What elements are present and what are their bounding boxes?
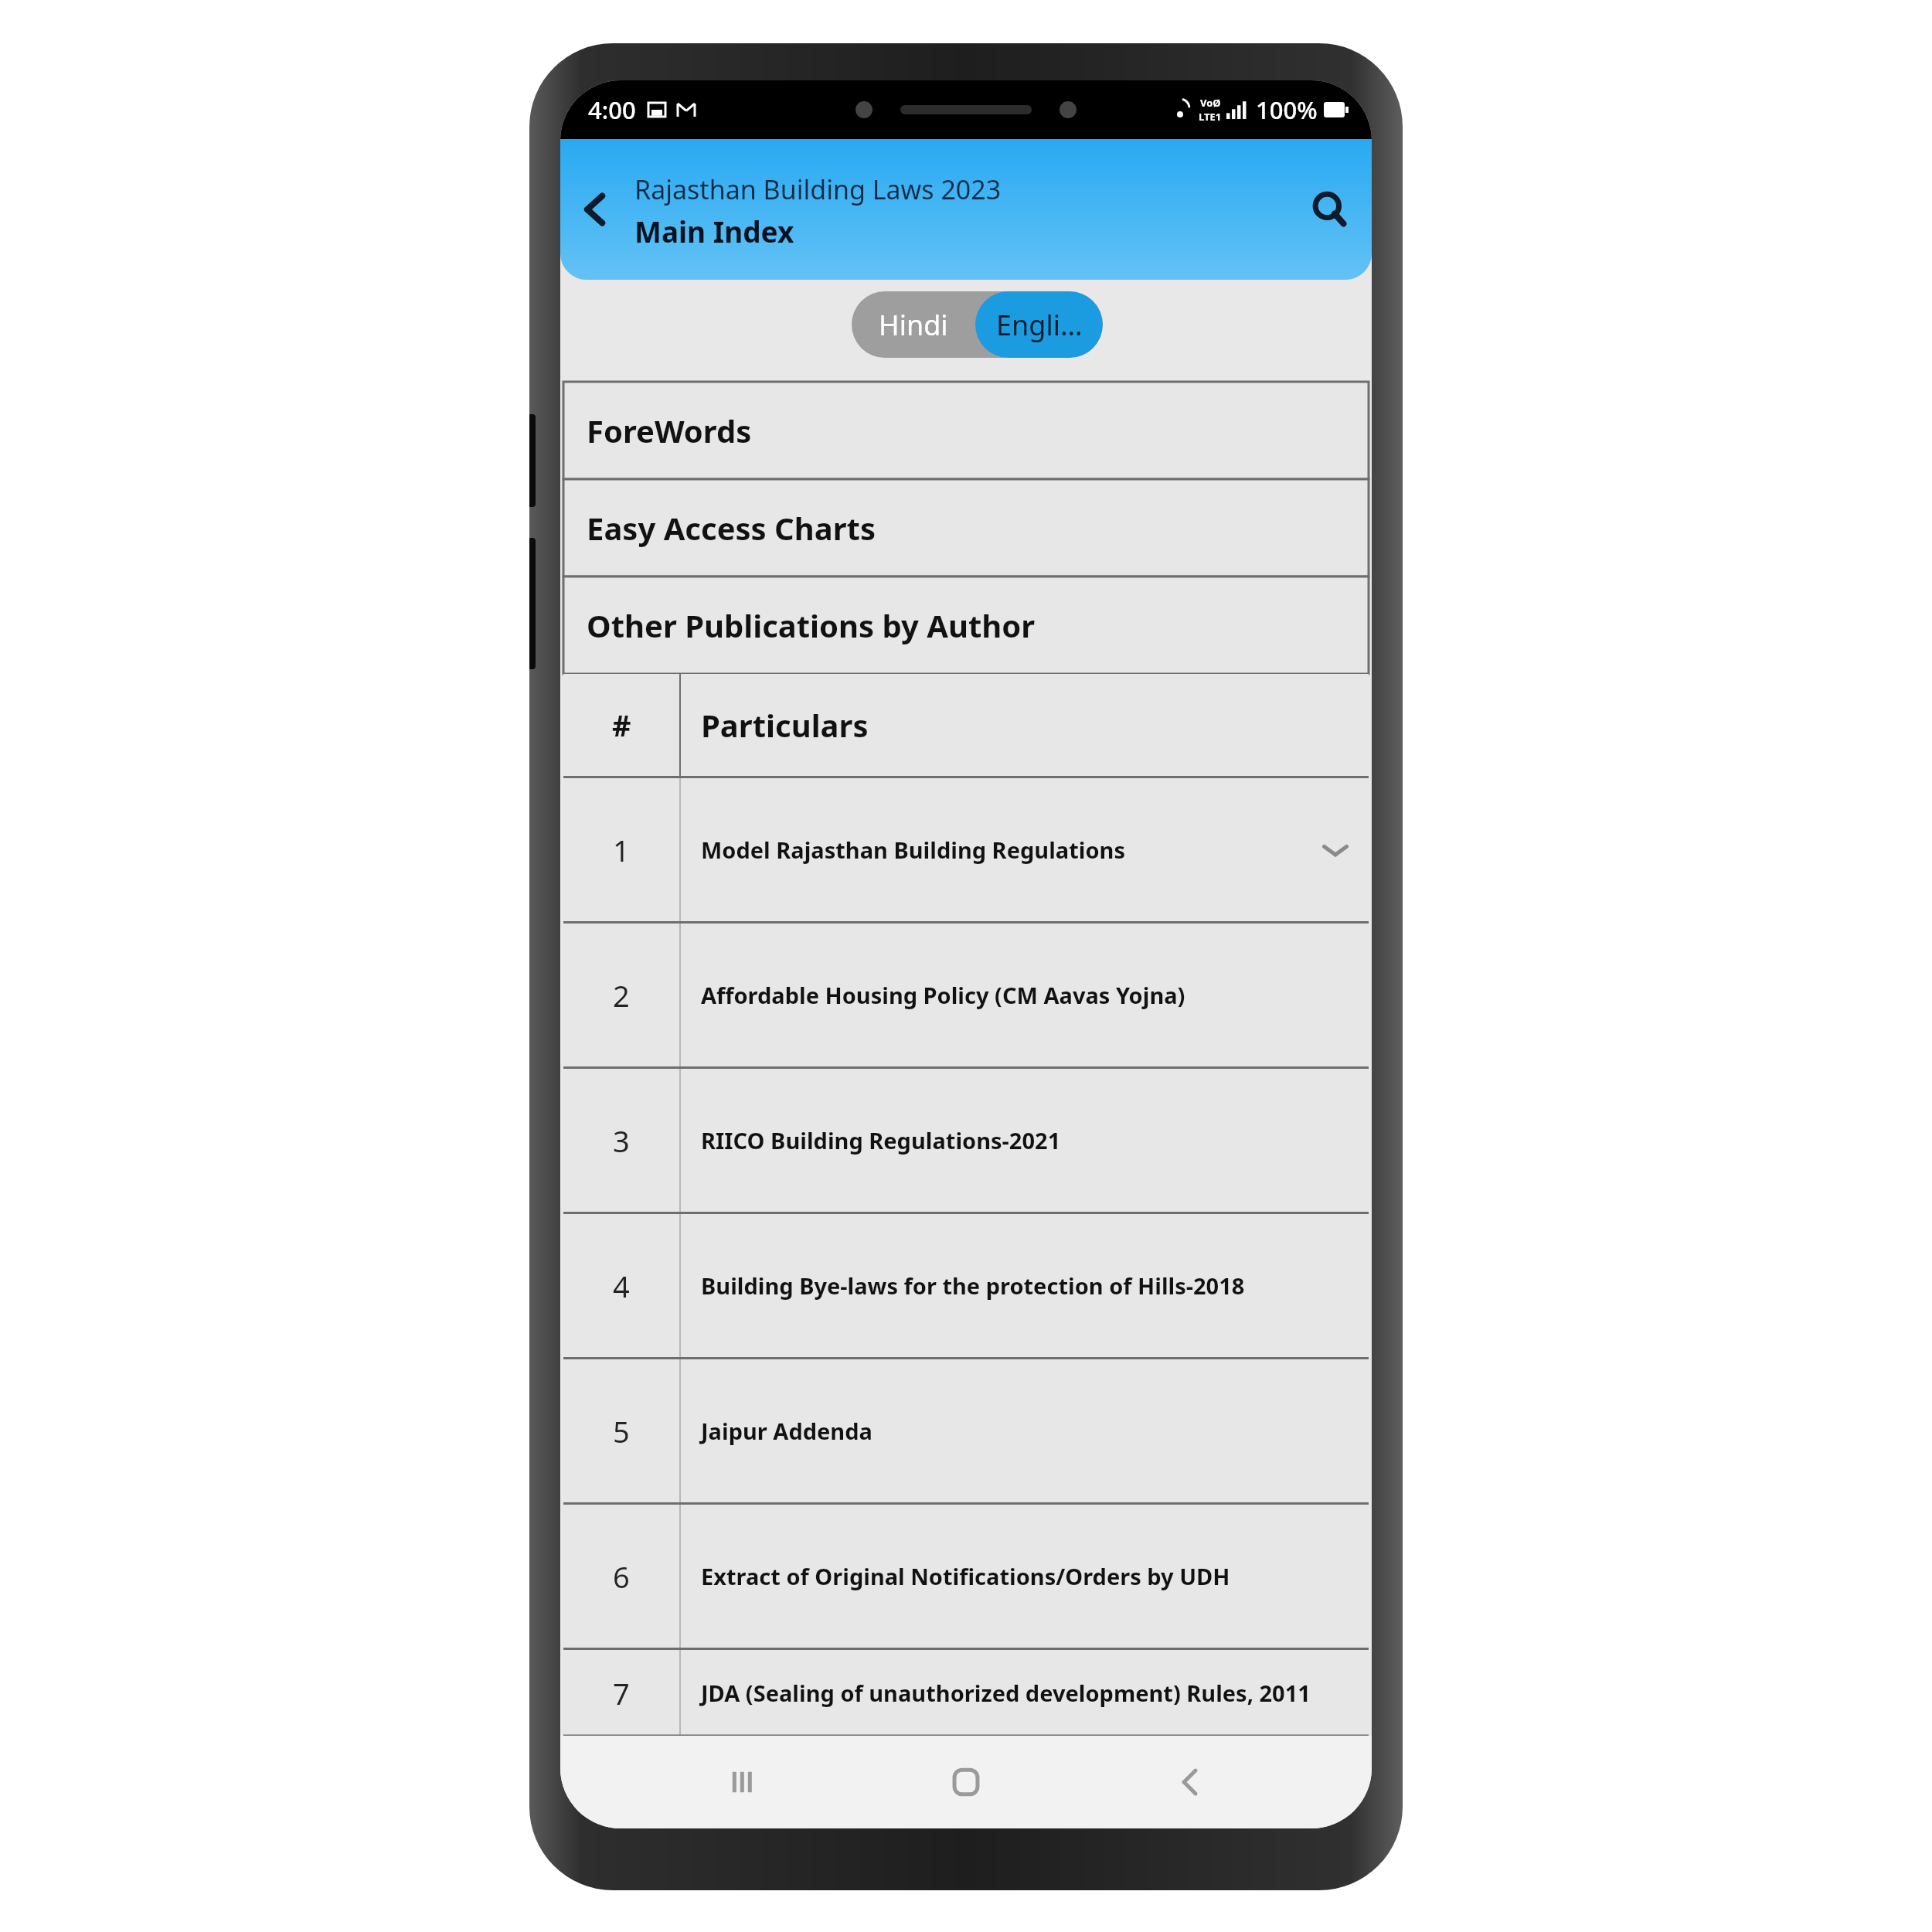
button[interactable]: 7: [563, 1650, 1369, 1736]
button[interactable]: 3: [563, 1069, 1369, 1212]
button[interactable]: Search: [1301, 180, 1359, 239]
staticText: Model Rajasthan Building Regulations: [701, 835, 1125, 865]
button[interactable]: ForeWords: [563, 382, 1369, 479]
button[interactable]: Other Publications by Author: [563, 577, 1369, 674]
button[interactable]: 1: [563, 778, 1369, 921]
staticText: 2: [613, 975, 630, 1015]
staticText: Hindi: [879, 306, 948, 344]
button[interactable]: 5: [563, 1359, 1369, 1502]
button[interactable]: 2: [563, 923, 1369, 1066]
button[interactable]: Hindi: [852, 291, 975, 358]
staticText: Main Index: [634, 212, 794, 250]
staticText: #: [612, 705, 631, 745]
staticText: Other Publications by Author: [587, 604, 1036, 646]
staticText: Extract of Original Notifications/Orders…: [701, 1561, 1230, 1591]
button[interactable]: Back: [566, 180, 625, 239]
staticText: 100%: [1256, 94, 1318, 126]
button[interactable]: 4: [563, 1214, 1369, 1357]
button[interactable]: Back: [1148, 1740, 1233, 1825]
button[interactable]: Easy Access Charts: [563, 479, 1369, 577]
staticText: 4:00: [588, 94, 636, 126]
button[interactable]: 6: [563, 1505, 1369, 1648]
staticText: RIICO Building Regulations-2021: [701, 1125, 1061, 1155]
staticText: Easy Access Charts: [587, 507, 876, 549]
staticText: 6: [613, 1556, 630, 1597]
staticText: JDA (Sealing of unauthorized development…: [701, 1678, 1311, 1708]
staticText: Engli…: [996, 306, 1083, 344]
staticText: 1: [613, 830, 630, 870]
staticText: LTE1: [1199, 110, 1222, 124]
staticText: Particulars: [701, 704, 869, 746]
staticText: Affordable Housing Policy (CM Aavas Yojn…: [701, 980, 1185, 1010]
button[interactable]: Engli…: [975, 291, 1103, 358]
staticText: VoØ: [1200, 96, 1221, 110]
staticText: Building Bye-laws for the protection of …: [701, 1270, 1245, 1301]
staticText: 7: [613, 1673, 630, 1713]
staticText: 3: [613, 1121, 630, 1161]
button[interactable]: Recents: [699, 1740, 784, 1825]
staticText: Jaipur Addenda: [701, 1416, 872, 1446]
staticText: 4: [613, 1266, 630, 1306]
button[interactable]: Home: [923, 1740, 1009, 1825]
staticText: Rajasthan Building Laws 2023: [634, 172, 1002, 207]
staticText: ForeWords: [587, 410, 752, 451]
staticText: 5: [613, 1411, 630, 1451]
